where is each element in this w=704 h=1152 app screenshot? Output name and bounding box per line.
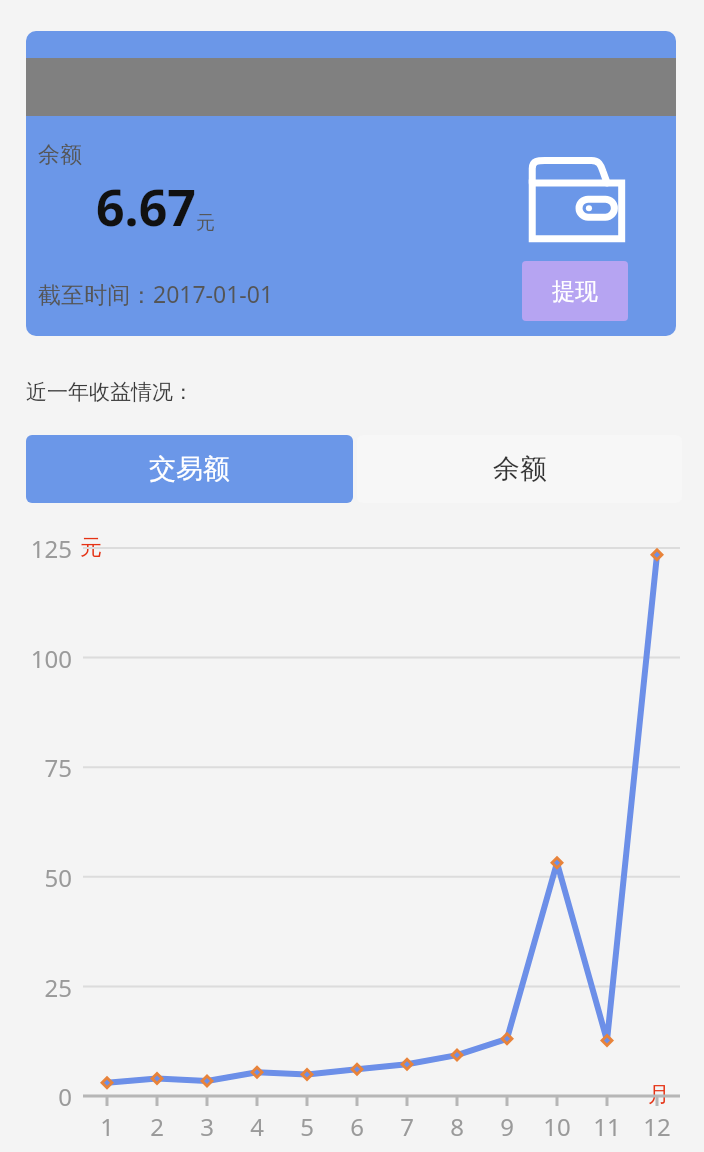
staticText: 3 [200, 1110, 214, 1143]
staticText: 余额 [38, 141, 82, 169]
staticText: 8 [450, 1110, 464, 1143]
button[interactable]: Wallet [526, 156, 630, 246]
button[interactable]: 提现 [522, 261, 628, 321]
staticText: 5 [300, 1110, 314, 1143]
staticText: 4 [250, 1110, 264, 1143]
staticText: 100 [30, 642, 72, 675]
staticText: 0 [58, 1080, 72, 1113]
staticText: 75 [44, 751, 72, 784]
button[interactable]: 余额 [26, 31, 676, 336]
staticText: 2 [150, 1110, 164, 1143]
staticText: 6 [350, 1110, 364, 1143]
staticText: 月 [648, 1081, 670, 1109]
staticText: 6.67 [96, 173, 196, 241]
staticText: 交易额 [149, 452, 230, 486]
staticText: 25 [44, 971, 72, 1004]
staticText: 1 [100, 1110, 114, 1143]
button[interactable]: 余额 [357, 435, 682, 503]
staticText: 近一年收益情况： [26, 379, 194, 405]
staticText: 截至时间：2017-01-01 [38, 278, 274, 309]
staticText: 10 [543, 1110, 571, 1143]
staticText: 余额 [493, 452, 547, 486]
button[interactable]: 交易额 [26, 435, 353, 503]
staticText: 元 [196, 211, 215, 235]
staticText: 元 [80, 534, 102, 562]
staticText: 9 [500, 1110, 514, 1143]
staticText: 125 [30, 532, 72, 565]
staticText: 50 [44, 861, 72, 894]
staticText: 7 [400, 1110, 414, 1143]
staticText: 12 [643, 1110, 671, 1143]
staticText: 11 [593, 1110, 621, 1143]
staticText: 提现 [552, 277, 598, 306]
